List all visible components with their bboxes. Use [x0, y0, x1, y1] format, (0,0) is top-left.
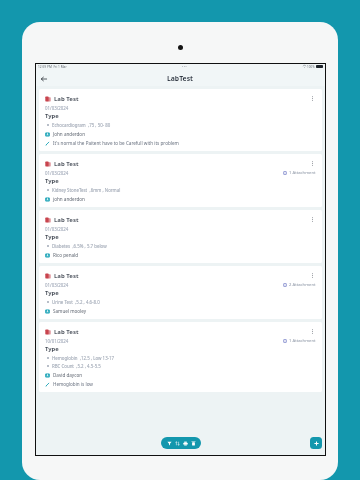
staticText: Hemoglobin is low — [53, 381, 93, 387]
staticText: RBC Count ,5.2 , 4.5-5.5 — [52, 363, 101, 369]
button[interactable]: More options — [309, 159, 316, 168]
button[interactable]: Lab Test — [39, 154, 322, 207]
staticText: 12:59 PM Fri 1 Mar — [38, 65, 67, 69]
button[interactable]: Print — [181, 439, 189, 447]
staticText: Diabetes ,6.5% , 5.7 below — [52, 243, 107, 249]
staticText: Lab Test — [54, 216, 79, 224]
staticText: Kidney StoneTest ,6mm , Normal — [52, 187, 121, 193]
staticText: David daycon — [53, 372, 83, 378]
staticText: Samuel mooley — [53, 308, 87, 314]
staticText: Echocardiogram ,75 , 50- 80 — [52, 122, 111, 128]
staticText: It's normal the Paitent have to be Caref… — [53, 140, 179, 146]
button[interactable]: Filter — [165, 439, 173, 447]
button[interactable]: Add — [310, 437, 322, 449]
staticText: Lab Test — [54, 160, 79, 168]
staticText: 01/03/2024 — [45, 226, 69, 232]
button[interactable]: More options — [309, 327, 316, 336]
staticText: 1 Attachment — [289, 170, 316, 176]
button[interactable]: 2 Attachment — [283, 282, 316, 288]
staticText: Lab Test — [54, 272, 79, 280]
staticText: 01/03/2024 — [45, 105, 69, 111]
button[interactable]: 1 Attachment — [283, 170, 316, 176]
staticText: 10/01/2024 — [45, 338, 69, 344]
staticText: Urine Test ,5.2 , 4.6-8.0 — [52, 299, 100, 305]
staticText: 2 Attachment — [289, 282, 316, 288]
staticText: LabTest — [167, 74, 194, 83]
button[interactable]: Back — [38, 73, 49, 84]
button[interactable]: Lab Test — [39, 322, 322, 392]
button[interactable]: Lab Test — [39, 89, 322, 151]
button[interactable]: More options — [309, 271, 316, 280]
staticText: 01/03/2024 — [45, 170, 69, 176]
staticText: john anderdon — [53, 196, 85, 202]
button[interactable]: Filter — [161, 437, 201, 449]
button[interactable]: Delete — [189, 439, 197, 447]
button[interactable]: More options — [309, 94, 316, 103]
button[interactable]: Sort — [173, 439, 181, 447]
staticText: Type — [45, 177, 59, 185]
button[interactable]: Lab Test — [39, 210, 322, 263]
button[interactable]: Lab Test — [39, 266, 322, 319]
staticText: Type — [45, 233, 59, 241]
staticText: 100% — [307, 65, 315, 69]
staticText: Lab Test — [54, 328, 79, 336]
button[interactable]: More options — [309, 215, 316, 224]
staticText: 1 Attachment — [289, 338, 316, 344]
staticText: Type — [45, 289, 59, 297]
staticText: 01/03/2024 — [45, 282, 69, 288]
staticText: Lab Test — [54, 95, 79, 103]
staticText: Type — [45, 345, 59, 353]
staticText: Rico penald — [53, 252, 79, 258]
staticText: • • • — [182, 65, 187, 69]
staticText: Hemoglobin ,12.5 , Low 13-17 — [52, 355, 115, 361]
staticText: John anderdon — [53, 131, 85, 137]
button[interactable]: 1 Attachment — [283, 338, 316, 344]
staticText: Type — [45, 112, 59, 120]
